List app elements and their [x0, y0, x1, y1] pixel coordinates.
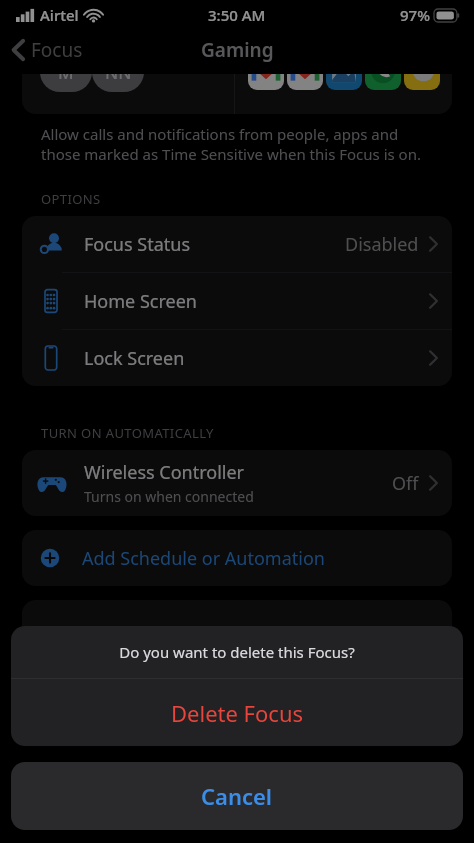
staticText: Cancel	[201, 781, 273, 811]
staticText: Allow calls and notifications from peopl…	[41, 124, 399, 144]
button[interactable]: Add	[22, 530, 452, 586]
staticText: Gaming	[201, 37, 274, 63]
staticText: M	[58, 74, 74, 84]
button[interactable]: M	[40, 74, 144, 92]
button[interactable]: Delete Focus	[11, 679, 463, 746]
button[interactable]	[248, 74, 440, 90]
staticText: Focus Status	[84, 232, 191, 257]
staticText: Disabled	[345, 232, 419, 257]
other: Add	[36, 544, 64, 572]
staticText: Airtel	[40, 5, 79, 25]
staticText: 97%	[400, 5, 430, 25]
other: Focus Status	[36, 229, 66, 259]
button[interactable]: Focus	[0, 31, 93, 69]
other: Wireless Controller	[36, 467, 68, 499]
button[interactable]: Cancel	[11, 762, 463, 830]
other: Home Screen	[36, 286, 66, 316]
staticText: Turns on when connected	[84, 487, 254, 506]
button[interactable]: Focus Status	[22, 216, 452, 272]
button[interactable]: Wireless Controller	[22, 450, 452, 516]
staticText: Lock Screen	[84, 346, 185, 371]
staticText: those marked as Time Sensitive when this…	[41, 144, 421, 164]
staticText: OPTIONS	[41, 190, 101, 208]
staticText: Wireless Controller	[84, 460, 245, 485]
staticText: NN	[105, 74, 132, 84]
staticText: Home Screen	[84, 289, 197, 314]
staticText: Focus	[31, 37, 83, 63]
button[interactable]: Home Screen	[22, 273, 452, 329]
staticText: TURN ON AUTOMATICALLY	[41, 424, 214, 442]
button[interactable]: Lock Screen	[22, 330, 452, 386]
staticText: Add Schedule or Automation	[82, 546, 325, 571]
staticText: Off	[392, 471, 419, 496]
staticText: 3:50 AM	[208, 5, 266, 25]
staticText: Do you want to delete this Focus?	[119, 642, 355, 662]
staticText: Delete Focus	[171, 698, 304, 728]
other: Lock Screen	[36, 343, 66, 373]
